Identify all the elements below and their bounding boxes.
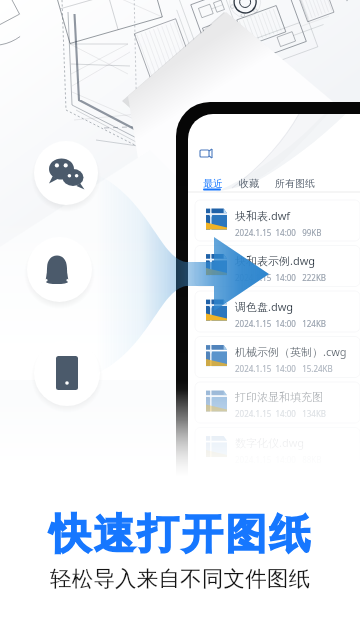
button[interactable]: Share to WeChat xyxy=(34,141,98,205)
button[interactable]: 块和表.dwf xyxy=(235,208,359,241)
staticText: 调色盘.dwg xyxy=(235,299,294,314)
staticText: 2024.1.15 14:00 134KB xyxy=(235,408,327,419)
staticText: 轻松导入来自不同文件图纸 xyxy=(50,565,311,592)
button[interactable]: 块和表示例.dwg xyxy=(235,253,359,286)
staticText: 打印浓显和填充图案.dwg xyxy=(235,390,359,404)
staticText: 机械示例（英制）.cwg xyxy=(235,344,347,359)
button[interactable]: Share to QQ xyxy=(27,237,92,302)
staticText: 收藏 xyxy=(239,177,259,190)
button[interactable]: 打印浓显和填充图案.dwg xyxy=(235,390,359,423)
button[interactable]: 收藏 xyxy=(238,175,260,192)
staticText: 数字化仪.dwg xyxy=(235,435,305,450)
button[interactable]: 调色盘.dwg xyxy=(235,299,359,332)
staticText: 所有图纸 xyxy=(275,177,315,190)
staticText: 块和表示例.dwg xyxy=(235,253,316,268)
staticText: 2024.1.15 14:00 124KB xyxy=(235,318,327,329)
staticText: 2024.1.15 14:00 15.24KB xyxy=(235,363,333,374)
staticText: 快速打开图纸 xyxy=(48,509,312,561)
button[interactable]: Open on phone xyxy=(34,340,100,406)
button[interactable]: 所有图纸 xyxy=(274,175,316,192)
staticText: 2024.1.15 14:00 99KB xyxy=(235,227,322,238)
staticText: 2024.1.15 14:00 222KB xyxy=(235,272,327,283)
staticText: 块和表.dwf xyxy=(235,208,291,223)
button[interactable]: 机械示例（英制）.cwg xyxy=(235,344,359,377)
staticText: 最近 xyxy=(203,177,223,190)
button[interactable]: 最近 xyxy=(202,175,224,192)
